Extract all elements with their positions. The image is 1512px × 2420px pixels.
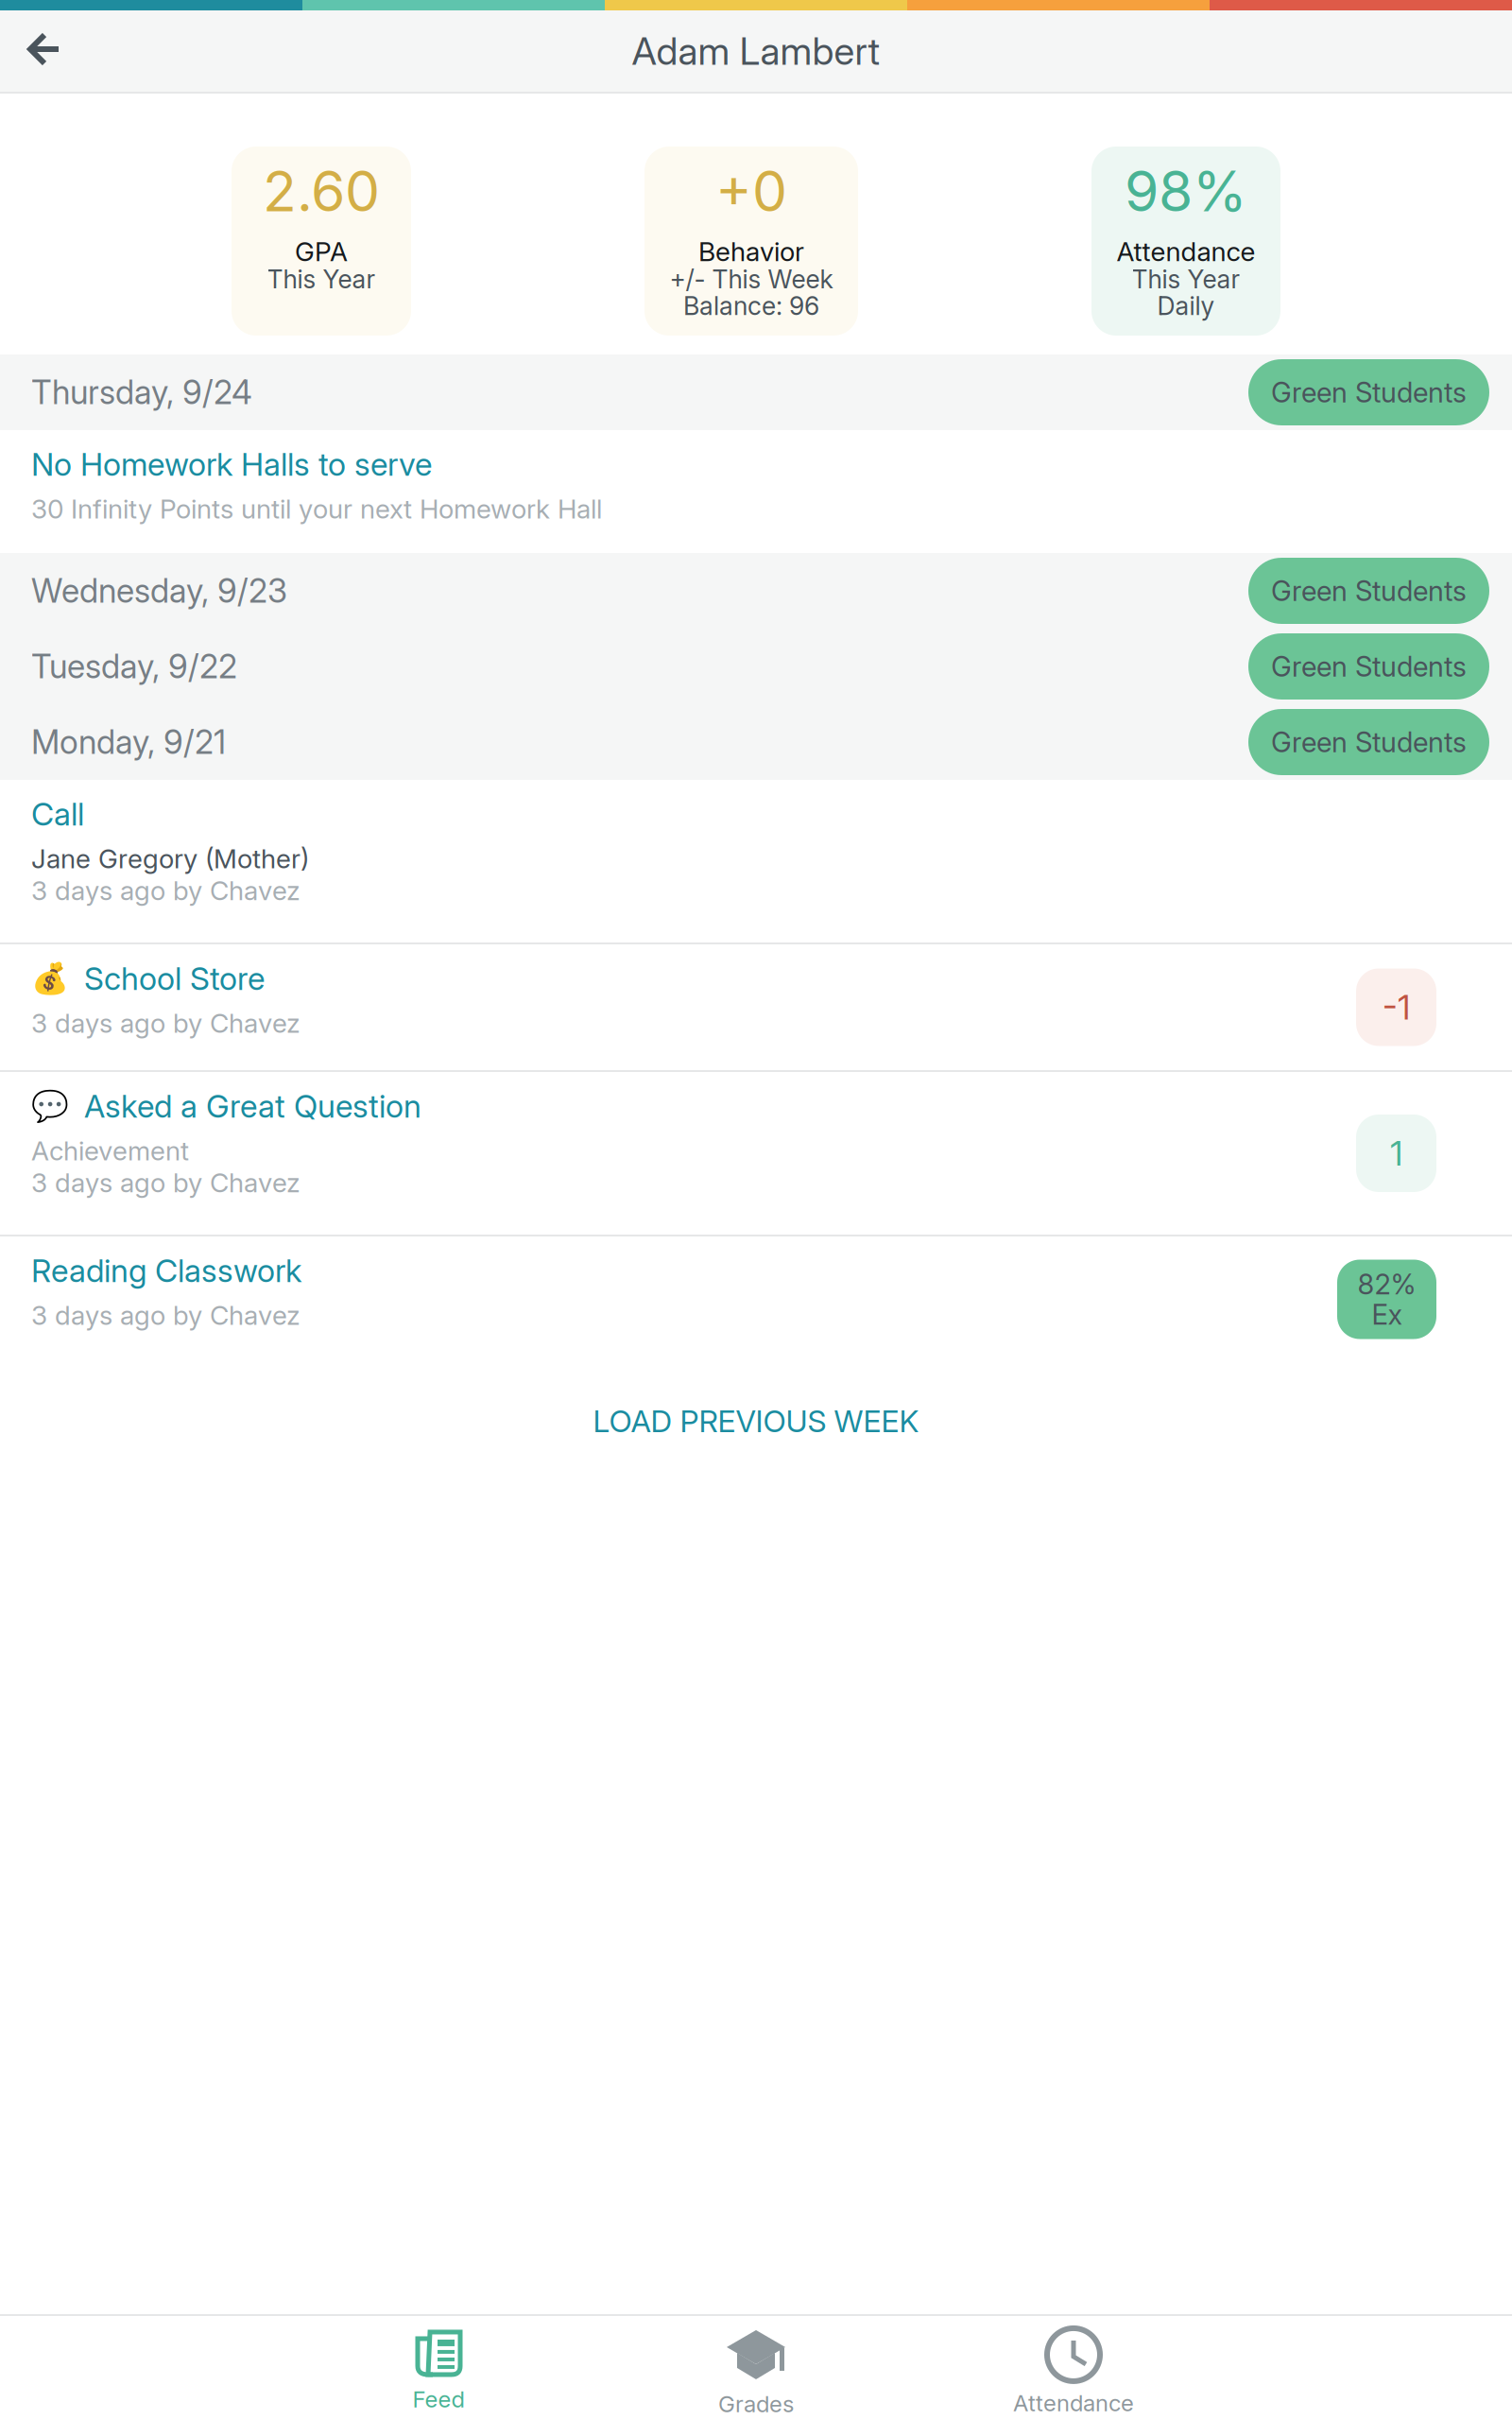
- staticText: School Store: [84, 961, 265, 996]
- button[interactable]: Back: [0, 11, 93, 91]
- staticText: Wednesday, 9/23: [31, 573, 287, 609]
- staticText: 30 Infinity Points until your next Homew…: [31, 493, 602, 525]
- staticText: 3 days ago by Chavez: [31, 1299, 301, 1331]
- staticText: Asked a Great Question: [84, 1089, 421, 1123]
- button[interactable]: Attendance: [915, 2311, 1232, 2420]
- button[interactable]: 💬: [0, 1072, 1512, 1235]
- staticText: Call: [31, 797, 84, 831]
- staticText: Jane Gregory (Mother): [31, 843, 309, 875]
- staticText: GPA: [295, 237, 348, 266]
- button[interactable]: Thursday, 9/24: [0, 354, 1512, 430]
- button[interactable]: Reading Classwork: [0, 1236, 1512, 1362]
- staticText: This Year: [267, 266, 376, 292]
- staticText: 3 days ago by Chavez: [31, 1167, 301, 1199]
- staticText: LOAD PREVIOUS WEEK: [593, 1405, 919, 1438]
- staticText: Adam Lambert: [632, 30, 880, 72]
- staticText: Tuesday, 9/22: [31, 649, 237, 684]
- staticText: Feed: [412, 2387, 464, 2411]
- button[interactable]: Call: [0, 780, 1512, 942]
- button[interactable]: No Homework Halls to serve: [0, 430, 1512, 553]
- staticText: Green Students: [1271, 576, 1467, 606]
- staticText: 💬: [31, 1090, 69, 1122]
- staticText: Green Students: [1271, 651, 1467, 681]
- button[interactable]: Monday, 9/21: [0, 704, 1512, 780]
- staticText: Green Students: [1271, 377, 1467, 407]
- staticText: No Homework Halls to serve: [31, 447, 432, 481]
- button[interactable]: Feed: [280, 2315, 597, 2420]
- staticText: Balance: 96: [683, 292, 819, 319]
- staticText: Attendance: [1013, 2391, 1134, 2415]
- staticText: 98%: [1125, 164, 1247, 219]
- staticText: Daily: [1157, 292, 1215, 319]
- staticText: Reading Classwork: [31, 1253, 301, 1288]
- staticText: 2.60: [263, 164, 380, 219]
- staticText: 1: [1390, 1135, 1402, 1172]
- staticText: Ex: [1372, 1299, 1402, 1329]
- staticText: Attendance: [1117, 237, 1255, 266]
- staticText: +/- This Week: [670, 266, 833, 292]
- staticText: -1: [1383, 989, 1410, 1026]
- button[interactable]: Wednesday, 9/23: [0, 553, 1512, 629]
- staticText: 💰: [31, 963, 69, 995]
- staticText: Behavior: [698, 237, 804, 266]
- button[interactable]: 💰: [0, 944, 1512, 1070]
- staticText: Monday, 9/21: [31, 724, 226, 760]
- button[interactable]: LOAD PREVIOUS WEEK: [0, 1362, 1512, 1482]
- staticText: Achievement: [31, 1135, 189, 1167]
- staticText: This Year: [1132, 266, 1240, 292]
- staticText: +0: [715, 164, 787, 219]
- staticText: Green Students: [1271, 727, 1467, 757]
- staticText: 82%: [1357, 1269, 1416, 1299]
- staticText: Grades: [718, 2392, 794, 2416]
- button[interactable]: Grades: [597, 2310, 915, 2420]
- staticText: 3 days ago by Chavez: [31, 875, 301, 907]
- staticText: Thursday, 9/24: [31, 374, 252, 410]
- button[interactable]: Tuesday, 9/22: [0, 629, 1512, 704]
- staticText: 3 days ago by Chavez: [31, 1007, 301, 1039]
